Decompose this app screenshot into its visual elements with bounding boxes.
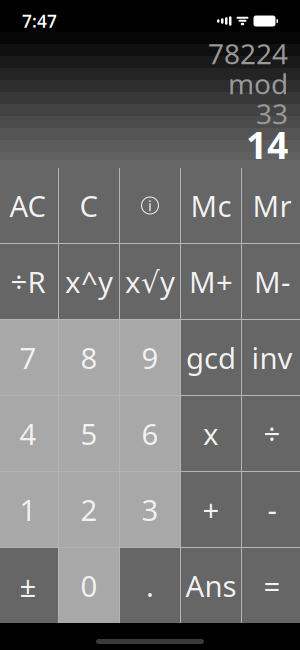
button[interactable]: 3 xyxy=(120,472,180,547)
staticText: 7 xyxy=(19,338,36,377)
staticText: 78224 xyxy=(208,35,288,72)
button[interactable]: M+ xyxy=(181,244,241,319)
staticText: 0 xyxy=(80,566,97,605)
staticText: i xyxy=(148,196,152,215)
button[interactable]: Info xyxy=(120,168,180,243)
button[interactable]: Mr xyxy=(242,168,300,243)
button[interactable]: M- xyxy=(242,244,300,319)
button[interactable]: Ans xyxy=(181,548,241,623)
button[interactable]: + xyxy=(181,472,241,547)
button[interactable]: 8 xyxy=(59,320,119,395)
staticText: = xyxy=(263,566,280,605)
button[interactable]: x xyxy=(181,396,241,471)
staticText: AC xyxy=(9,186,46,225)
staticText: 3 xyxy=(141,490,158,529)
staticText: 8 xyxy=(80,338,97,377)
staticText: 14 xyxy=(246,120,288,169)
staticText: 5 xyxy=(80,414,97,453)
button[interactable]: C xyxy=(59,168,119,243)
button[interactable]: = xyxy=(242,548,300,623)
button[interactable]: ÷R xyxy=(0,244,58,319)
staticText: Mr xyxy=(252,186,291,225)
button[interactable]: - xyxy=(242,472,300,547)
button[interactable]: 4 xyxy=(0,396,58,471)
staticText: ÷R xyxy=(10,262,45,301)
staticText: C xyxy=(79,186,98,225)
staticText: 33 xyxy=(256,95,288,132)
staticText: 2 xyxy=(80,490,97,529)
staticText: 7:47 xyxy=(22,9,57,32)
button[interactable]: ÷ xyxy=(242,396,300,471)
staticText: M+ xyxy=(189,262,233,301)
button[interactable]: 1 xyxy=(0,472,58,547)
button[interactable]: ± xyxy=(0,548,58,623)
staticText: gcd xyxy=(186,338,236,377)
staticText: 1 xyxy=(19,490,36,529)
staticText: inv xyxy=(251,338,292,377)
button[interactable]: 5 xyxy=(59,396,119,471)
staticText: - xyxy=(267,490,276,529)
staticText: 9 xyxy=(141,338,158,377)
staticText: . xyxy=(146,566,154,605)
staticText: + xyxy=(202,490,219,529)
staticText: ± xyxy=(19,566,36,605)
staticText: mod xyxy=(228,65,288,102)
staticText: x xyxy=(203,414,219,453)
button[interactable]: 7 xyxy=(0,320,58,395)
button[interactable]: x^y xyxy=(59,244,119,319)
staticText: 4 xyxy=(19,414,36,453)
staticText: Mc xyxy=(190,186,231,225)
staticText: M- xyxy=(254,262,290,301)
button[interactable]: AC xyxy=(0,168,58,243)
button[interactable]: gcd xyxy=(181,320,241,395)
button[interactable]: 6 xyxy=(120,396,180,471)
button[interactable]: . xyxy=(120,548,180,623)
button[interactable]: 2 xyxy=(59,472,119,547)
button[interactable]: inv xyxy=(242,320,300,395)
staticText: x^y xyxy=(65,262,113,301)
button[interactable]: 9 xyxy=(120,320,180,395)
button[interactable]: Mc xyxy=(181,168,241,243)
button[interactable]: x√y xyxy=(120,244,180,319)
staticText: Ans xyxy=(185,566,236,605)
staticText: ÷ xyxy=(263,414,280,453)
staticText: 6 xyxy=(141,414,158,453)
button[interactable]: 0 xyxy=(59,548,119,623)
staticText: x√y xyxy=(125,262,175,301)
